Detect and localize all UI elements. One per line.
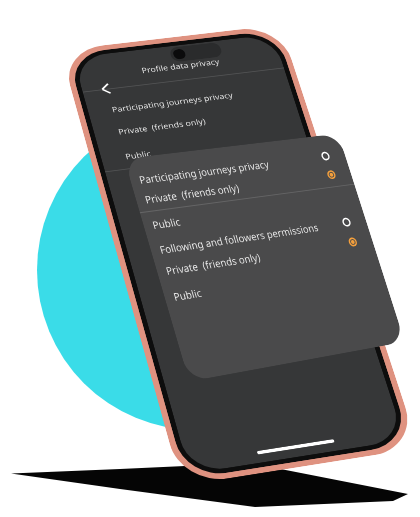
- button[interactable]: Following and followers permissions: [105, 147, 317, 196]
- button[interactable]: Private (friends only): [91, 98, 301, 146]
- staticText: Following and followers permissions: [158, 220, 320, 257]
- staticText: Following and followers permissions: [131, 157, 284, 187]
- button[interactable]: Participating journeys privacy: [127, 144, 348, 191]
- staticText: Public: [150, 214, 182, 232]
- staticText: Profile data privacy: [140, 56, 221, 76]
- button[interactable]: Public: [140, 186, 361, 236]
- button[interactable]: Back: [92, 78, 120, 100]
- button[interactable]: Following and followers permissions: [148, 209, 369, 261]
- staticText: Public: [124, 148, 153, 162]
- staticText: Public: [172, 285, 203, 304]
- button[interactable]: Private (friends only): [112, 171, 325, 221]
- staticText: Participating journeys privacy: [137, 157, 271, 187]
- button[interactable]: Participating journeys privacy: [85, 77, 294, 123]
- button[interactable]: Private (friends only): [133, 162, 354, 210]
- button[interactable]: Public: [98, 122, 309, 171]
- staticText: Participating journeys privacy: [111, 90, 234, 115]
- button[interactable]: Public: [119, 195, 333, 245]
- staticText: Private (friends only): [138, 189, 230, 211]
- button[interactable]: Private (friends only): [154, 229, 375, 282]
- staticText: Private (friends only): [164, 249, 263, 278]
- staticText: Private (friends only): [117, 116, 207, 137]
- staticText: Public: [145, 222, 174, 236]
- button[interactable]: Public: [161, 253, 383, 308]
- staticText: Private (friends only): [143, 180, 241, 206]
